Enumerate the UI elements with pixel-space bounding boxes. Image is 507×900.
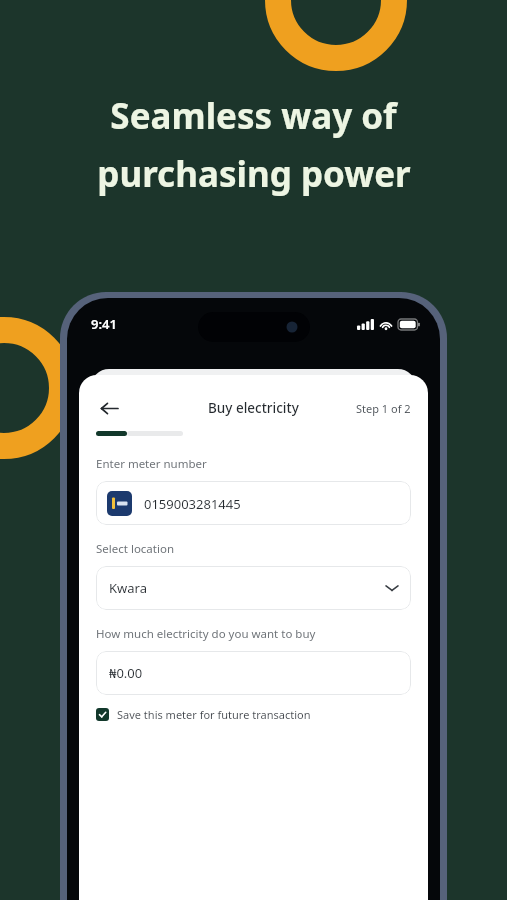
- staticText: Seamless way of: [110, 92, 397, 140]
- button[interactable]: Save this meter for future transaction: [96, 707, 311, 722]
- staticText: ₦0.00: [109, 664, 143, 682]
- staticText: Save this meter for future transaction: [117, 707, 311, 722]
- staticText: 9:41: [91, 315, 117, 333]
- staticText: 0159003281445: [144, 495, 241, 513]
- staticText: Step 1 of 2: [356, 401, 411, 416]
- staticText: Select location: [96, 541, 174, 557]
- button[interactable]: Kwara: [96, 566, 411, 610]
- staticText: How much electricity do you want to buy: [96, 626, 316, 642]
- staticText: Buy electricity: [208, 399, 299, 417]
- staticText: purchasing power: [97, 150, 411, 198]
- staticText: Kwara: [109, 579, 147, 597]
- button[interactable]: 0159003281445: [96, 481, 411, 525]
- button[interactable]: ₦0.00: [96, 651, 411, 695]
- button[interactable]: Back: [96, 396, 122, 420]
- staticText: Enter meter number: [96, 456, 207, 472]
